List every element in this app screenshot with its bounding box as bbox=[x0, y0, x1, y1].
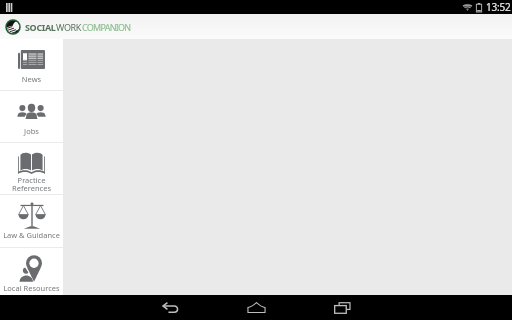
button[interactable]: Practice References bbox=[0, 143, 63, 195]
staticText: COMPANION bbox=[82, 21, 131, 33]
button[interactable]: News bbox=[0, 39, 63, 91]
staticText: 13:52 bbox=[486, 0, 511, 14]
button[interactable]: Law & Guidance bbox=[0, 195, 63, 248]
staticText: Jobs bbox=[0, 126, 63, 136]
button[interactable]: Back bbox=[127, 295, 213, 320]
button[interactable]: Jobs bbox=[0, 91, 63, 143]
staticText: Practice References bbox=[0, 175, 63, 193]
staticText: News bbox=[0, 74, 63, 84]
staticText: SOCIAL bbox=[25, 21, 56, 33]
button[interactable]: Recent apps bbox=[299, 295, 385, 320]
staticText: Law & Guidance bbox=[0, 230, 63, 240]
staticText: WORK bbox=[56, 21, 82, 33]
button[interactable]: Local Resources bbox=[0, 248, 63, 295]
button[interactable]: Home bbox=[213, 295, 299, 320]
staticText: Local Resources bbox=[0, 283, 63, 293]
